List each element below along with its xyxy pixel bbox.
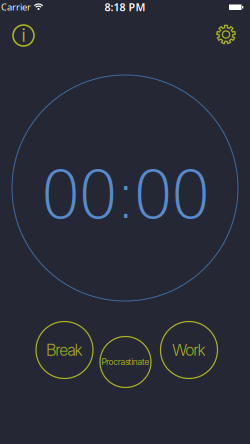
button[interactable]: Procrastinate	[98, 335, 152, 389]
button[interactable]: Break	[34, 320, 94, 380]
button[interactable]: i	[10, 22, 36, 48]
staticText: 8:18 PM	[104, 0, 145, 14]
staticText: 00:00	[39, 156, 211, 234]
staticText: Work	[172, 340, 206, 360]
staticText: i	[21, 25, 25, 46]
button[interactable]: Work	[159, 320, 219, 380]
staticText: Carrier	[1, 1, 31, 13]
staticText: Break	[46, 340, 83, 360]
button[interactable]	[213, 21, 239, 47]
staticText: Procrastinate	[101, 357, 150, 367]
